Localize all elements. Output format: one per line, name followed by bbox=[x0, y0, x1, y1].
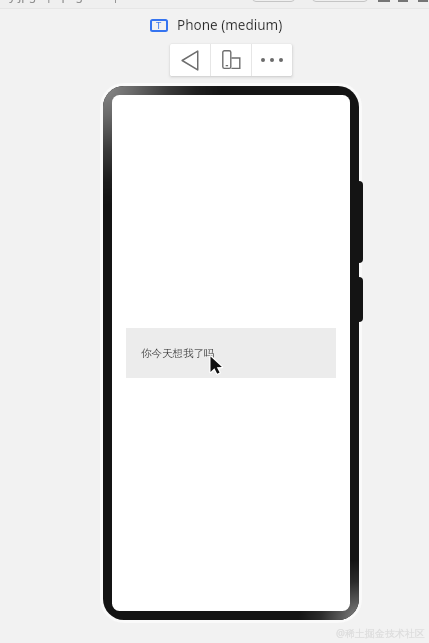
button[interactable]: 你今天想我了吗 bbox=[126, 328, 336, 378]
staticText: Phone (medium) bbox=[177, 16, 283, 34]
button[interactable]: More options bbox=[252, 44, 292, 76]
button[interactable]: Run preview bbox=[170, 44, 210, 76]
staticText: 你今天想我了吗 bbox=[141, 347, 215, 360]
staticText: ly.jpg | page: 0 | Variant: default bbox=[0, 0, 215, 3]
staticText: @稀土掘金技术社区 bbox=[336, 626, 425, 640]
staticText: T bbox=[156, 19, 162, 32]
button[interactable]: Device configuration bbox=[211, 44, 251, 76]
